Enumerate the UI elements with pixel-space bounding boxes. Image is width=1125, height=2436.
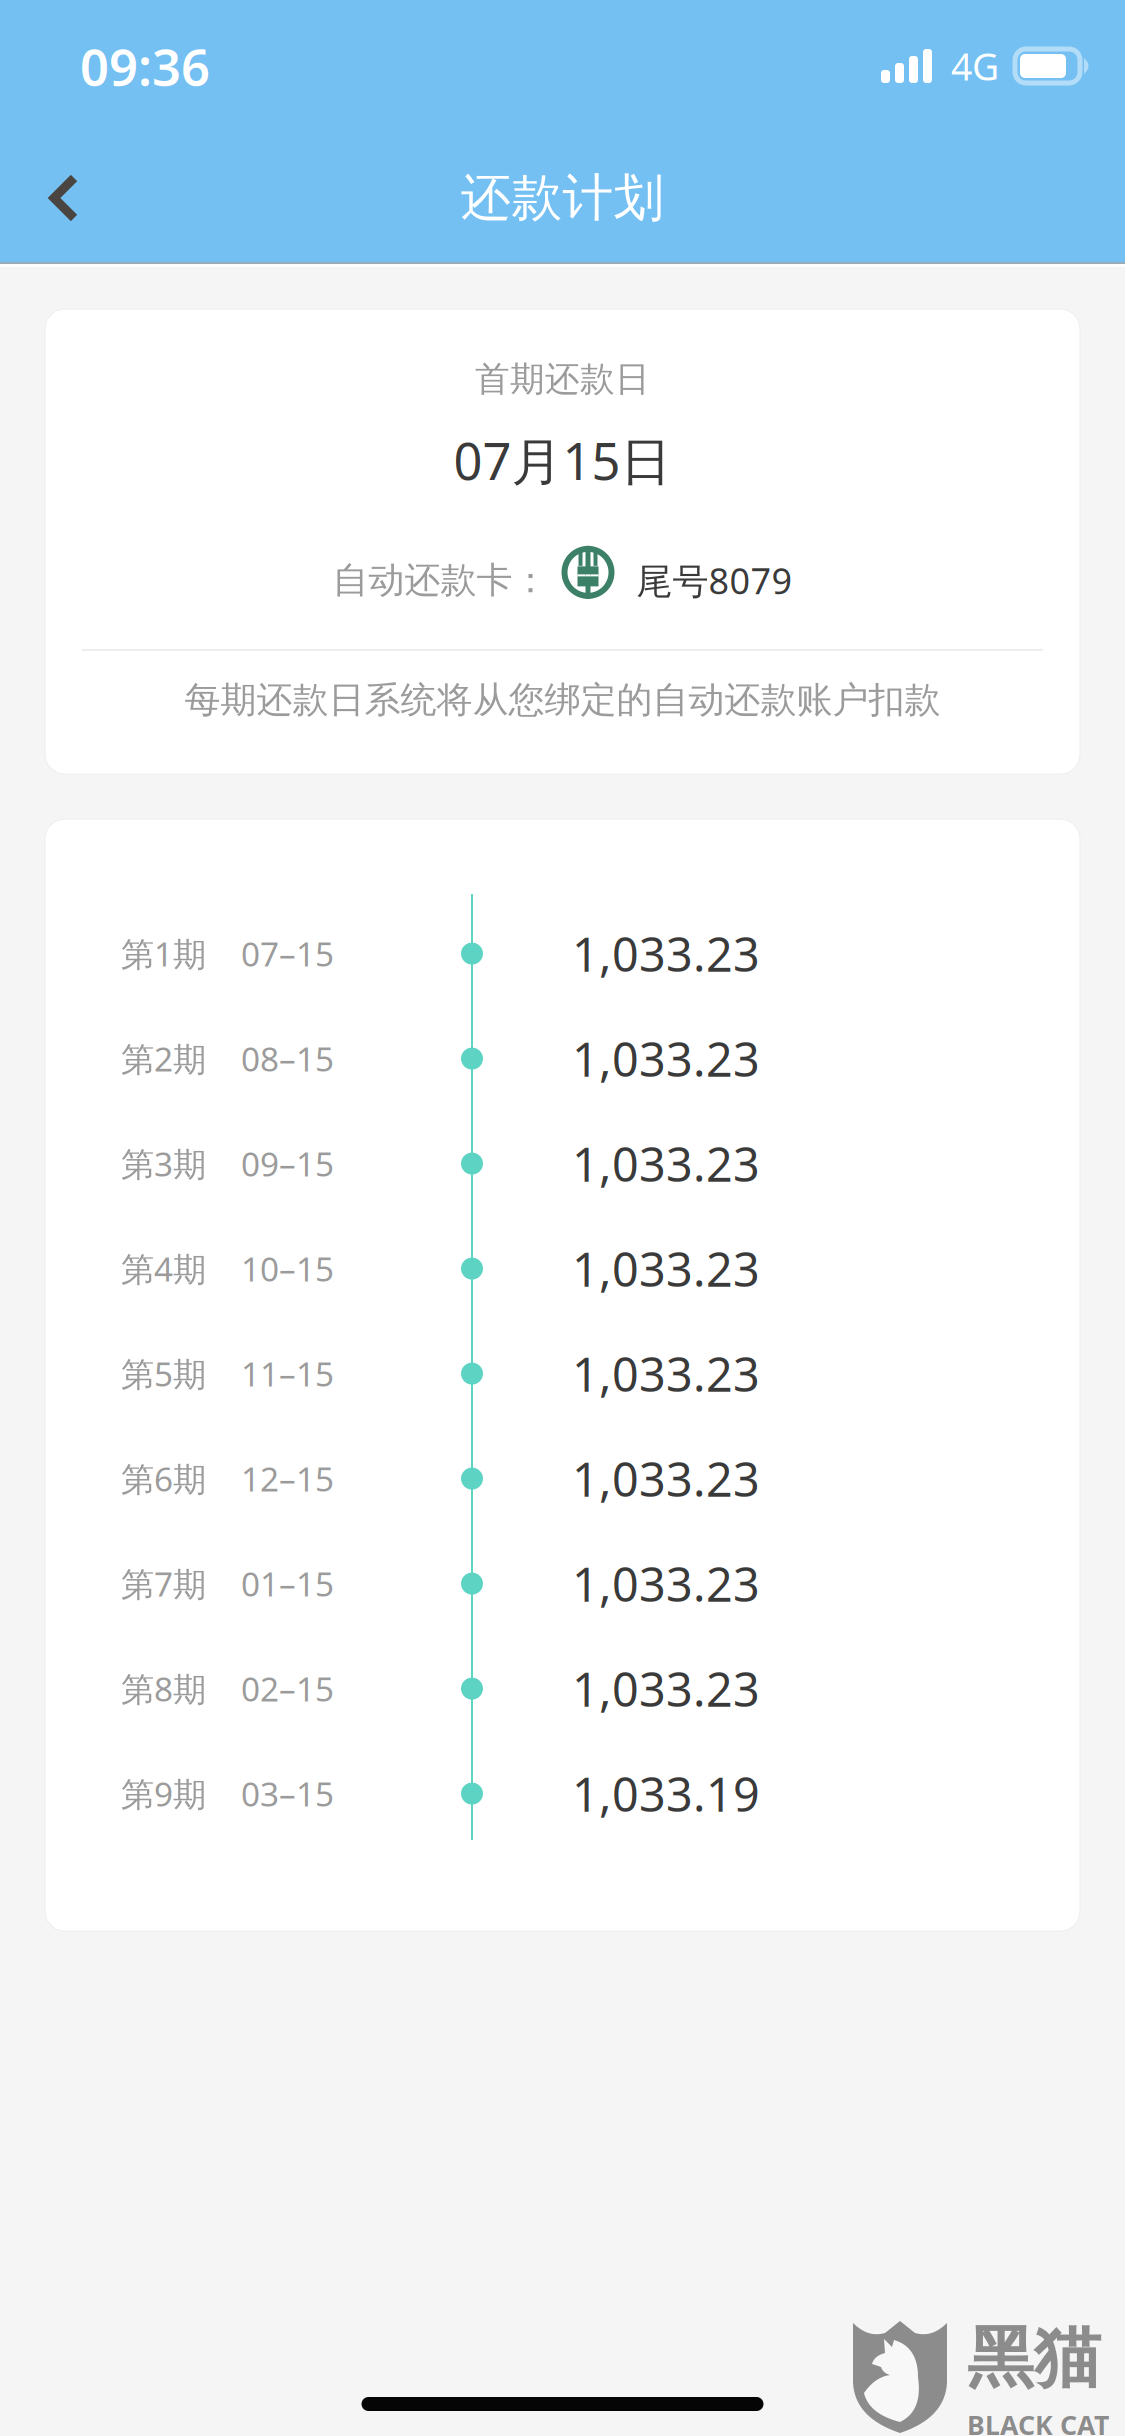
staticText: 第1期 — [121, 931, 206, 976]
staticText: 首期还款日 — [475, 358, 650, 401]
staticText: 08–15 — [241, 1036, 334, 1081]
staticText: 03–15 — [241, 1771, 334, 1816]
staticText: 1,033.23 — [572, 1553, 760, 1615]
staticText: 第9期 — [121, 1771, 206, 1816]
staticText: 1,033.23 — [572, 1448, 760, 1510]
button[interactable]: 返回 — [0, 132, 128, 264]
staticText: 1,033.23 — [572, 923, 760, 985]
staticText: BLACK CAT — [967, 2407, 1109, 2436]
staticText: 02–15 — [241, 1666, 334, 1711]
staticText: 1,033.23 — [572, 1028, 760, 1090]
staticText: 第3期 — [121, 1141, 206, 1186]
staticText: 07–15 — [241, 931, 334, 976]
staticText: 第6期 — [121, 1456, 206, 1501]
staticText: 07月15日 — [453, 427, 671, 494]
staticText: 1,033.23 — [572, 1238, 760, 1300]
staticText: 1,033.23 — [572, 1343, 760, 1405]
staticText: 第4期 — [121, 1246, 206, 1291]
staticText: 还款计划 — [460, 167, 664, 229]
staticText: 第7期 — [121, 1561, 206, 1606]
staticText: 1,033.23 — [572, 1658, 760, 1720]
staticText: 01–15 — [241, 1561, 334, 1606]
staticText: 每期还款日系统将从您绑定的自动还款账户扣款 — [184, 678, 940, 722]
staticText: 1,033.23 — [572, 1133, 760, 1195]
staticText: 09–15 — [241, 1141, 334, 1186]
staticText: 4G — [951, 41, 999, 91]
staticText: 黑猫 — [967, 2317, 1101, 2399]
staticText: 第8期 — [121, 1666, 206, 1711]
staticText: 第2期 — [121, 1036, 206, 1081]
staticText: 尾号8079 — [636, 556, 792, 604]
staticText: 10–15 — [241, 1246, 334, 1291]
staticText: 第5期 — [121, 1351, 206, 1396]
staticText: 1,033.19 — [572, 1763, 760, 1825]
staticText: 11–15 — [241, 1351, 334, 1396]
staticText: 12–15 — [241, 1456, 334, 1501]
staticText: 自动还款卡： — [332, 558, 548, 602]
staticText: 09:36 — [80, 32, 210, 100]
